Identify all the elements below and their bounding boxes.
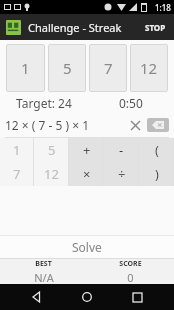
button[interactable]: Home — [74, 284, 100, 310]
button[interactable]: 5 — [34, 138, 69, 162]
button[interactable]: - — [104, 138, 139, 162]
staticText: ÷ — [118, 165, 126, 183]
button[interactable]: 7 — [89, 44, 127, 92]
staticText: Solve — [72, 239, 102, 255]
button[interactable]: 12 — [34, 162, 69, 186]
staticText: 12 — [140, 58, 158, 78]
staticText: 12 × ( 7 - 5 ) × 1 — [5, 117, 90, 133]
button[interactable]: × — [69, 162, 104, 186]
staticText: 7 — [13, 165, 21, 183]
staticText: 1 — [21, 58, 30, 78]
button[interactable]: 5 — [48, 44, 86, 92]
staticText: SCORE — [119, 259, 142, 269]
staticText: 5 — [48, 141, 56, 159]
staticText: N/A — [34, 270, 54, 284]
button[interactable]: 1 — [6, 44, 45, 92]
staticText: BEST — [35, 259, 52, 269]
button[interactable]: ÷ — [104, 162, 139, 186]
staticText: 0 — [127, 270, 134, 284]
button[interactable]: ) — [139, 162, 174, 186]
staticText: ) — [155, 165, 159, 183]
staticText: Target: 24 — [16, 95, 72, 111]
staticText: 1:18 — [155, 2, 171, 13]
button[interactable]: SCORE — [87, 259, 174, 284]
button[interactable]: BEST — [0, 259, 87, 284]
button[interactable]: App icon — [6, 20, 21, 35]
staticText: 5 — [63, 58, 72, 78]
button[interactable]: + — [69, 138, 104, 162]
staticText: + — [83, 141, 91, 159]
button[interactable]: 12 — [130, 44, 168, 92]
staticText: 1 — [13, 141, 21, 159]
staticText: 12 — [44, 165, 59, 183]
button[interactable]: Solve — [0, 236, 174, 258]
staticText: × — [83, 165, 91, 183]
staticText: - — [119, 141, 124, 159]
button[interactable]: Back — [24, 284, 50, 310]
button[interactable]: ( — [139, 138, 174, 162]
button[interactable]: Recents — [124, 284, 150, 310]
staticText: Challenge - Streak — [28, 20, 122, 35]
staticText: 7 — [104, 58, 113, 78]
button[interactable]: Backspace — [147, 118, 169, 132]
button[interactable]: Clear — [125, 115, 145, 135]
staticText: STOP — [145, 22, 166, 33]
button[interactable]: 7 — [0, 162, 34, 186]
staticText: 0:50 — [119, 95, 143, 111]
button[interactable]: 1 — [0, 138, 34, 162]
button[interactable]: STOP — [137, 16, 174, 39]
staticText: ( — [155, 141, 159, 159]
